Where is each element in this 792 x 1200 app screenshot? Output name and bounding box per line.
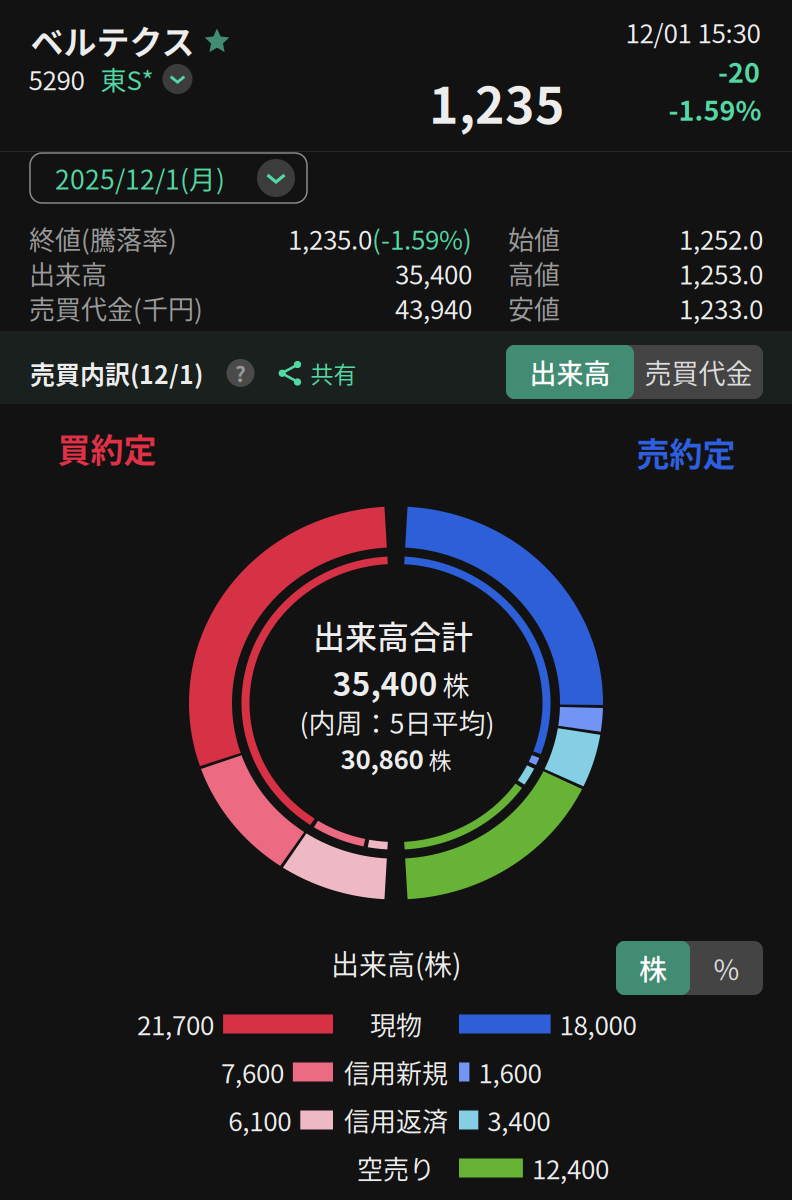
- staticText: 12/01 15:30: [625, 13, 760, 51]
- staticText: 東S*: [100, 60, 153, 98]
- staticText: 1,252.0: [679, 220, 763, 257]
- button[interactable]: 共有: [277, 348, 356, 398]
- staticText: ?: [235, 358, 246, 388]
- staticText: 株: [639, 948, 667, 988]
- staticText: 高値: [508, 254, 560, 292]
- button[interactable]: 市場区分: [84, 60, 192, 98]
- staticText: 安値: [508, 289, 560, 327]
- staticText: 出来高(株): [331, 943, 461, 983]
- staticText: 信用返済: [344, 1101, 448, 1139]
- staticText: 1,253.0: [679, 254, 763, 292]
- staticText: %: [713, 948, 739, 988]
- staticText: 30,860: [340, 739, 423, 777]
- staticText: (内周：5日平均): [299, 702, 494, 742]
- staticText: 現物: [370, 1005, 422, 1043]
- staticText: 株: [442, 665, 469, 704]
- staticText: 売約定: [636, 428, 735, 476]
- staticText: 売買内訳(12/1): [30, 355, 203, 391]
- staticText: 売買代金: [644, 352, 752, 392]
- staticText: 35,400: [395, 254, 472, 292]
- staticText: 6,100: [228, 1101, 291, 1139]
- staticText: 信用新規: [344, 1053, 448, 1091]
- staticText: 売買代金(千円): [29, 289, 203, 327]
- staticText: 1,233.0: [679, 289, 763, 327]
- button[interactable]: ヘルプ: [218, 351, 262, 395]
- staticText: 出来高合計: [313, 612, 473, 658]
- staticText: ベルテクス: [30, 16, 194, 64]
- staticText: 出来高: [529, 352, 610, 392]
- staticText: 35,400: [332, 659, 437, 705]
- button[interactable]: %: [690, 941, 763, 995]
- staticText: 始値: [508, 220, 560, 257]
- staticText: 株: [639, 948, 667, 988]
- staticText: 空売り: [357, 1149, 435, 1187]
- staticText: 5290: [28, 60, 84, 98]
- staticText: 1,235.0: [288, 220, 372, 257]
- staticText: 1,235: [429, 66, 565, 138]
- staticText: 43,940: [395, 289, 472, 327]
- button[interactable]: 売買代金: [634, 345, 763, 399]
- staticText: 終値(騰落率): [29, 220, 177, 257]
- staticText: 出来高: [529, 352, 610, 392]
- staticText: 18,000: [560, 1005, 637, 1043]
- staticText: (-1.59%): [372, 220, 472, 257]
- staticText: 共有: [310, 356, 356, 390]
- staticText: 3,400: [487, 1101, 550, 1139]
- staticText: 出来高: [29, 254, 107, 292]
- staticText: 7,600: [221, 1053, 284, 1091]
- staticText: 2025/12/1(月): [55, 159, 225, 197]
- staticText: 12,400: [532, 1149, 609, 1187]
- button[interactable]: 2025/12/1(月): [30, 153, 307, 203]
- staticText: -1.59%: [668, 89, 761, 129]
- staticText: -20: [718, 51, 760, 91]
- staticText: 21,700: [137, 1005, 214, 1043]
- staticText: 買約定: [57, 424, 156, 472]
- staticText: 1,600: [478, 1053, 541, 1091]
- button[interactable]: 出来高: [506, 345, 634, 399]
- staticText: 株: [428, 743, 451, 776]
- button[interactable]: 株: [616, 941, 690, 995]
